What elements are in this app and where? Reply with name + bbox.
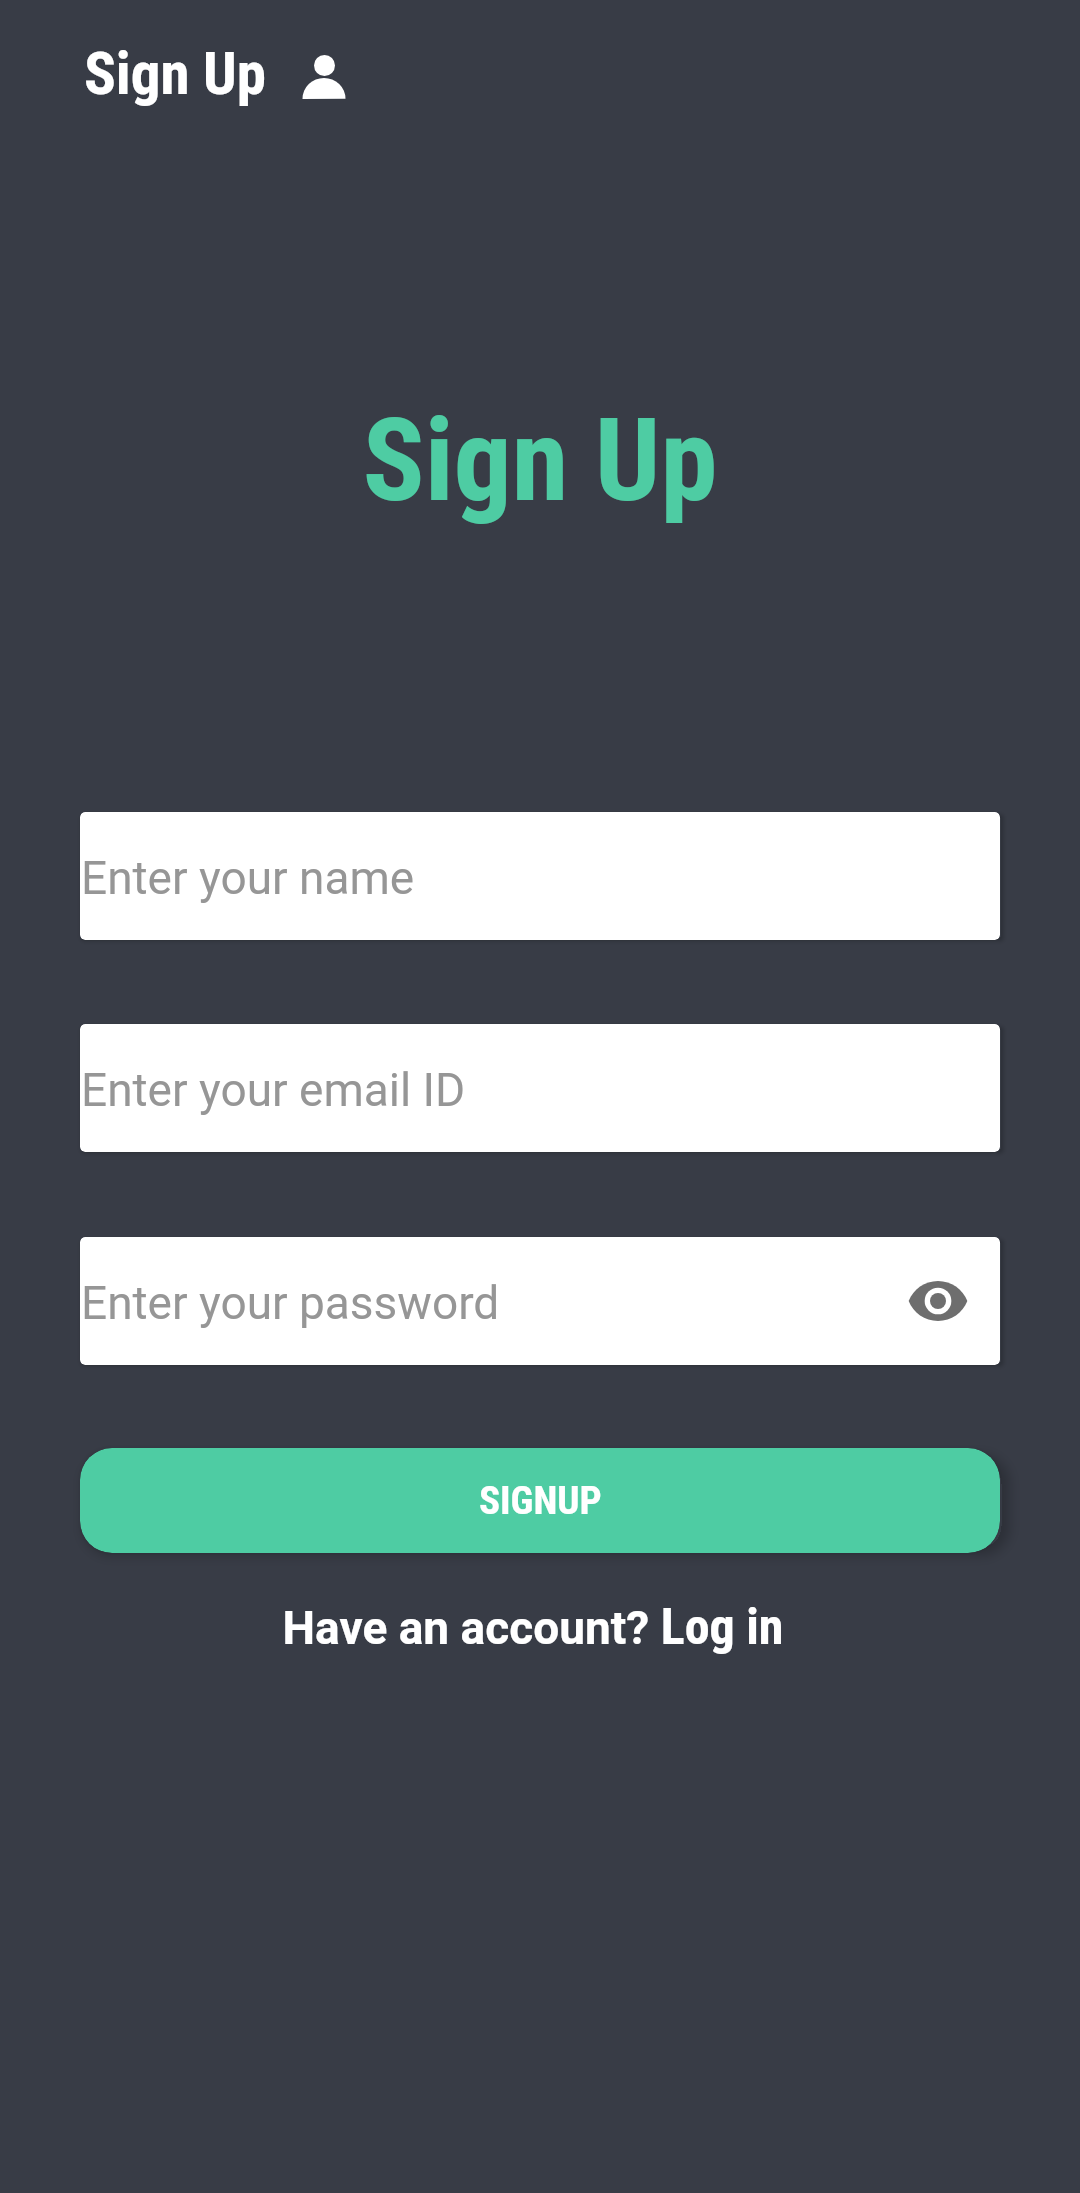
staticText: Enter your password bbox=[81, 1276, 500, 1330]
button[interactable] bbox=[300, 53, 348, 101]
button[interactable]: Enter your name bbox=[80, 812, 1000, 940]
staticText: Enter your name bbox=[81, 851, 415, 905]
staticText: Sign Up bbox=[0, 393, 1080, 528]
staticText: Sign Up bbox=[84, 39, 267, 108]
button[interactable]: Have an account? Log in bbox=[0, 1598, 1073, 1657]
button[interactable]: Enter your password bbox=[80, 1237, 1000, 1365]
button[interactable] bbox=[906, 1269, 970, 1333]
staticText: Enter your email ID bbox=[81, 1063, 466, 1117]
button[interactable]: Enter your email ID bbox=[80, 1024, 1000, 1152]
staticText: SIGNUP bbox=[479, 1478, 602, 1524]
button[interactable]: SIGNUP bbox=[80, 1448, 1000, 1553]
